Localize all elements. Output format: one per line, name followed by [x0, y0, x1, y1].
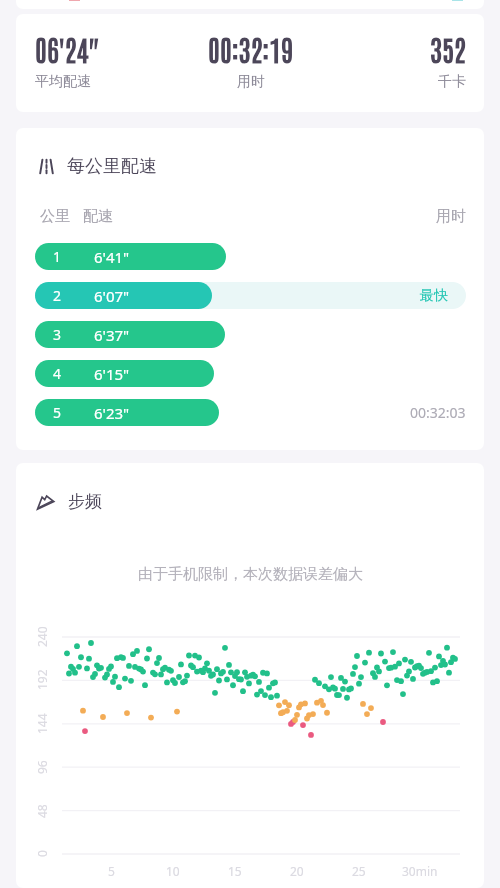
- staticText: 6'15": [94, 364, 130, 384]
- staticText: 6'37": [94, 325, 130, 345]
- staticText: 1: [53, 247, 62, 266]
- staticText: 352: [430, 30, 466, 67]
- staticText: 10: [166, 863, 180, 879]
- staticText: 5: [53, 403, 62, 422]
- staticText: 00:32:03: [410, 403, 466, 422]
- staticText: 3: [53, 325, 62, 344]
- staticText: 最快: [420, 287, 448, 305]
- button[interactable]: 1: [16, 243, 484, 270]
- staticText: 千卡: [438, 73, 466, 91]
- staticText: 步频: [68, 491, 102, 512]
- staticText: 15: [228, 863, 242, 879]
- staticText: 平均配速: [35, 73, 91, 91]
- staticText: 每公里配速: [67, 155, 157, 178]
- button[interactable]: 5: [16, 399, 484, 426]
- staticText: 96: [34, 760, 50, 774]
- staticText: 6'41": [94, 247, 130, 267]
- staticText: 25: [352, 863, 366, 879]
- staticText: 由于手机限制，本次数据误差偏大: [138, 565, 363, 584]
- staticText: 6'07": [94, 286, 130, 306]
- staticText: 48: [34, 804, 50, 818]
- staticText: 5: [108, 863, 115, 879]
- button[interactable]: 3: [16, 321, 484, 348]
- staticText: 4: [53, 364, 62, 383]
- staticText: 240: [34, 626, 50, 647]
- staticText: 30min: [402, 863, 438, 879]
- staticText: 0: [34, 850, 50, 857]
- staticText: 20: [290, 863, 304, 879]
- staticText: 2: [53, 286, 62, 305]
- staticText: 用时: [237, 73, 265, 91]
- button[interactable]: 2: [16, 282, 484, 309]
- staticText: 公里: [40, 207, 70, 226]
- staticText: 192: [34, 669, 50, 690]
- staticText: 配速: [83, 207, 113, 226]
- staticText: 144: [34, 713, 50, 734]
- staticText: 6'23": [94, 403, 130, 423]
- button[interactable]: 4: [16, 360, 484, 387]
- staticText: 06'24": [35, 30, 99, 67]
- staticText: 用时: [436, 207, 466, 226]
- staticText: 00:32:19: [208, 30, 293, 67]
